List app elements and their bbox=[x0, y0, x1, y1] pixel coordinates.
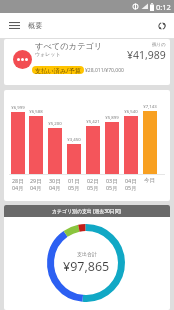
button[interactable]: ¥6,999 bbox=[4, 90, 170, 201]
button[interactable]: カテゴリ別の支出 (過去30日間) bbox=[4, 205, 170, 310]
staticText: ¥97,865 bbox=[63, 258, 110, 275]
staticText: ¥3,450 bbox=[67, 136, 81, 142]
staticText: 05月 bbox=[68, 184, 80, 191]
staticText: 04月 bbox=[49, 184, 61, 191]
staticText: ¥28,011/¥70,000 bbox=[85, 67, 124, 74]
staticText: ¥5,421 bbox=[86, 118, 100, 124]
staticText: ¥41,989 bbox=[127, 48, 166, 62]
staticText: 01日 bbox=[68, 177, 80, 184]
staticText: 残りの bbox=[152, 42, 166, 48]
staticText: ¥5,899 bbox=[105, 114, 119, 120]
staticText: 04日 bbox=[125, 177, 137, 184]
button[interactable]: Sync bbox=[150, 13, 174, 38]
staticText: ¥7,143 bbox=[143, 103, 157, 109]
staticText: 28日 bbox=[12, 177, 24, 184]
staticText: 今日 bbox=[144, 177, 155, 184]
staticText: 05月 bbox=[125, 184, 137, 191]
staticText: ¥5,200 bbox=[48, 120, 62, 126]
staticText: 30日 bbox=[49, 177, 61, 184]
staticText: 05月 bbox=[87, 184, 99, 191]
staticText: 29日 bbox=[30, 177, 42, 184]
staticText: ¥6,588 bbox=[29, 108, 43, 114]
button[interactable]: Open navigation menu bbox=[2, 13, 26, 38]
staticText: 0:12 bbox=[156, 2, 171, 12]
staticText: 支出合計 bbox=[77, 251, 97, 257]
staticText: 04月 bbox=[30, 184, 42, 191]
staticText: 02日 bbox=[87, 177, 99, 184]
staticText: ¥6,540 bbox=[124, 108, 138, 114]
staticText: カテゴリ別の支出 (過去30日間) bbox=[52, 208, 122, 215]
staticText: すべてのカテゴリ bbox=[35, 41, 103, 51]
staticText: 支払い済み/予算 bbox=[35, 66, 81, 74]
staticText: 03日 bbox=[106, 177, 118, 184]
staticText: ¥6,999 bbox=[11, 104, 25, 110]
staticText: 概要 bbox=[28, 21, 43, 30]
staticText: 04月 bbox=[12, 184, 24, 191]
button[interactable]: すべてのカテゴリ bbox=[4, 39, 170, 85]
staticText: ウォレット bbox=[35, 51, 61, 57]
staticText: 05月 bbox=[106, 184, 118, 191]
